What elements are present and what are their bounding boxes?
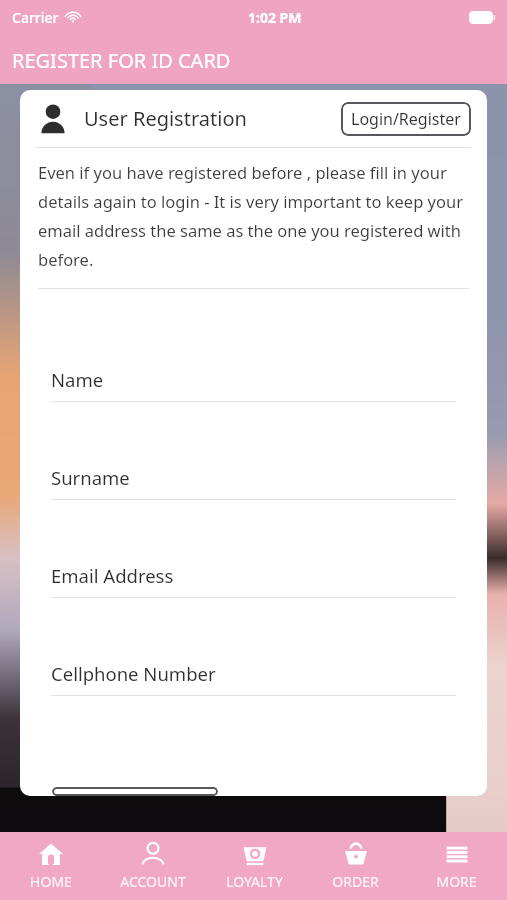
- staticText: HOME: [30, 872, 72, 891]
- staticText: LOYALTY: [226, 872, 283, 891]
- staticText: Cellphone Number: [51, 661, 216, 686]
- button[interactable]: ORDER: [305, 832, 406, 900]
- staticText: Carrier: [12, 8, 59, 27]
- button[interactable]: ACCOUNT: [102, 832, 204, 900]
- button[interactable]: MORE: [406, 832, 507, 900]
- staticText: Email Address: [51, 563, 174, 588]
- button[interactable]: Why we need this ?: [52, 787, 218, 796]
- staticText: Even if you have registered before , ple…: [38, 161, 471, 271]
- staticText: Name: [51, 367, 104, 392]
- staticText: Surname: [51, 465, 130, 490]
- staticText: ACCOUNT: [120, 872, 186, 891]
- button[interactable]: HOME: [0, 832, 102, 900]
- button[interactable]: Login/Register: [341, 102, 471, 136]
- button[interactable]: LOYALTY: [204, 832, 305, 900]
- staticText: MORE: [436, 872, 477, 891]
- staticText: Login/Register: [351, 108, 461, 130]
- staticText: User Registration: [84, 105, 247, 132]
- staticText: ORDER: [332, 872, 379, 891]
- staticText: REGISTER FOR ID CARD: [12, 47, 231, 74]
- staticText: 1:02 PM: [248, 8, 302, 27]
